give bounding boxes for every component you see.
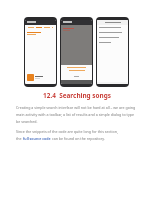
button[interactable] <box>25 73 56 82</box>
button[interactable] <box>99 40 126 45</box>
button[interactable]: full source code <box>23 136 51 141</box>
staticText: the <box>16 136 23 141</box>
button[interactable] <box>35 27 43 28</box>
button[interactable] <box>43 27 51 28</box>
staticText: main activity with a toolbar, a list of … <box>16 112 137 117</box>
button[interactable] <box>99 25 126 30</box>
staticText: can be found on the repository. <box>51 136 105 141</box>
staticText: Creating a simple search interface will … <box>16 105 137 110</box>
button[interactable] <box>27 27 35 28</box>
staticText: 12.4 Searching songs <box>43 91 111 100</box>
button[interactable] <box>99 30 126 35</box>
staticText: Since the snippets of the code are quite… <box>16 129 118 134</box>
button[interactable] <box>73 75 80 78</box>
staticText: be searched. <box>16 119 38 124</box>
staticText: full source code <box>23 136 51 141</box>
button[interactable] <box>51 27 54 28</box>
button[interactable] <box>99 35 126 40</box>
